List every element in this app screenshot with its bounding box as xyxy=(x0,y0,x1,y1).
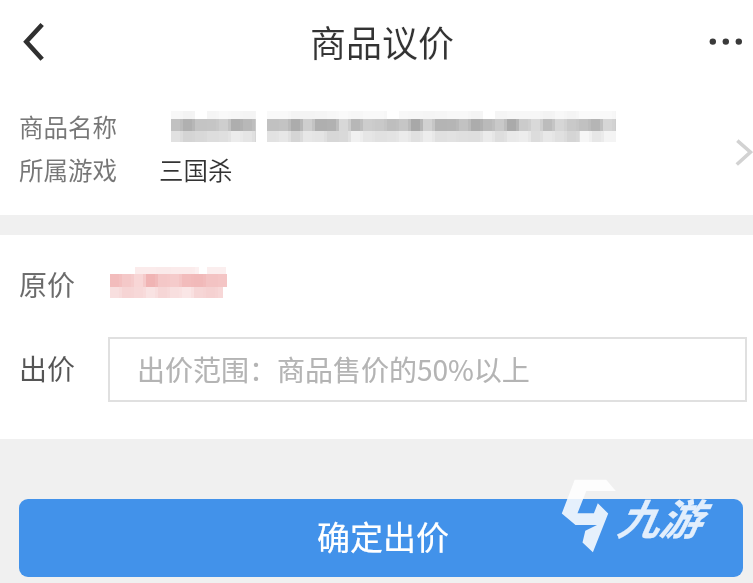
button[interactable]: More options xyxy=(696,13,753,70)
button[interactable] xyxy=(0,84,753,215)
button[interactable]: 出价范围：商品售价的50%以上 xyxy=(108,337,747,402)
staticText: 出价 xyxy=(19,348,76,389)
staticText: 原价 xyxy=(19,264,76,305)
staticText: 九游 xyxy=(616,486,701,547)
button[interactable]: Back xyxy=(4,12,62,70)
staticText: 商品议价 xyxy=(310,15,455,67)
staticText: 三国杀 xyxy=(159,152,233,187)
button[interactable]: 确定出价 xyxy=(19,499,743,577)
staticText: 确定出价 xyxy=(317,512,449,560)
staticText: 出价范围：商品售价的50%以上 xyxy=(137,349,530,390)
staticText: 商品名称 xyxy=(19,109,117,144)
staticText: 所属游戏 xyxy=(19,152,117,187)
button[interactable]: Product details xyxy=(712,122,753,163)
